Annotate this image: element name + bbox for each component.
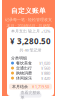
staticText: 较上月 +12% [28, 28, 50, 34]
button[interactable]: 购物消费 [7, 71, 54, 76]
staticText: 共 48 笔记录 [19, 47, 41, 53]
staticText: ¥ 880 [41, 70, 50, 76]
button[interactable]: 休闲娱乐 [7, 76, 54, 81]
staticText: 自定义账单 [11, 7, 46, 15]
staticText: ¥ 1,719.50 [32, 84, 49, 89]
staticText: 本月 · 2024年6月 · 共48笔 [6, 23, 50, 28]
staticText: 餐饮美食 [16, 61, 32, 65]
staticText: 购物消费 [16, 71, 32, 75]
staticText: ¥1,020 [39, 60, 50, 66]
staticText: ¥ 3,280.50 [10, 36, 51, 46]
staticText: ¥ 420 [41, 75, 50, 81]
staticText: ¥ 560 [41, 65, 50, 71]
staticText: 记录每一笔 · 轻松管理收支 [5, 17, 52, 22]
staticText: 本月结余 [12, 84, 28, 89]
button[interactable]: 交通出行 [7, 66, 54, 71]
staticText: 休闲娱乐 [16, 76, 32, 80]
staticText: 交通出行 [16, 66, 32, 70]
button[interactable]: 查看完整账单 [19, 93, 41, 98]
staticText: 分类明细 [11, 56, 27, 61]
staticText: 查看完整账单 [20, 90, 40, 100]
button[interactable]: 餐饮美食 [7, 61, 54, 66]
staticText: 本月支出 [11, 29, 27, 33]
